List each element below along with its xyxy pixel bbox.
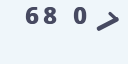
staticText: 0 [73,0,87,30]
staticText: 0 [74,0,88,30]
staticText: 8 [44,0,58,30]
staticText: 6 [26,0,40,30]
staticText: 6 [25,0,39,30]
staticText: 8 [43,0,57,30]
